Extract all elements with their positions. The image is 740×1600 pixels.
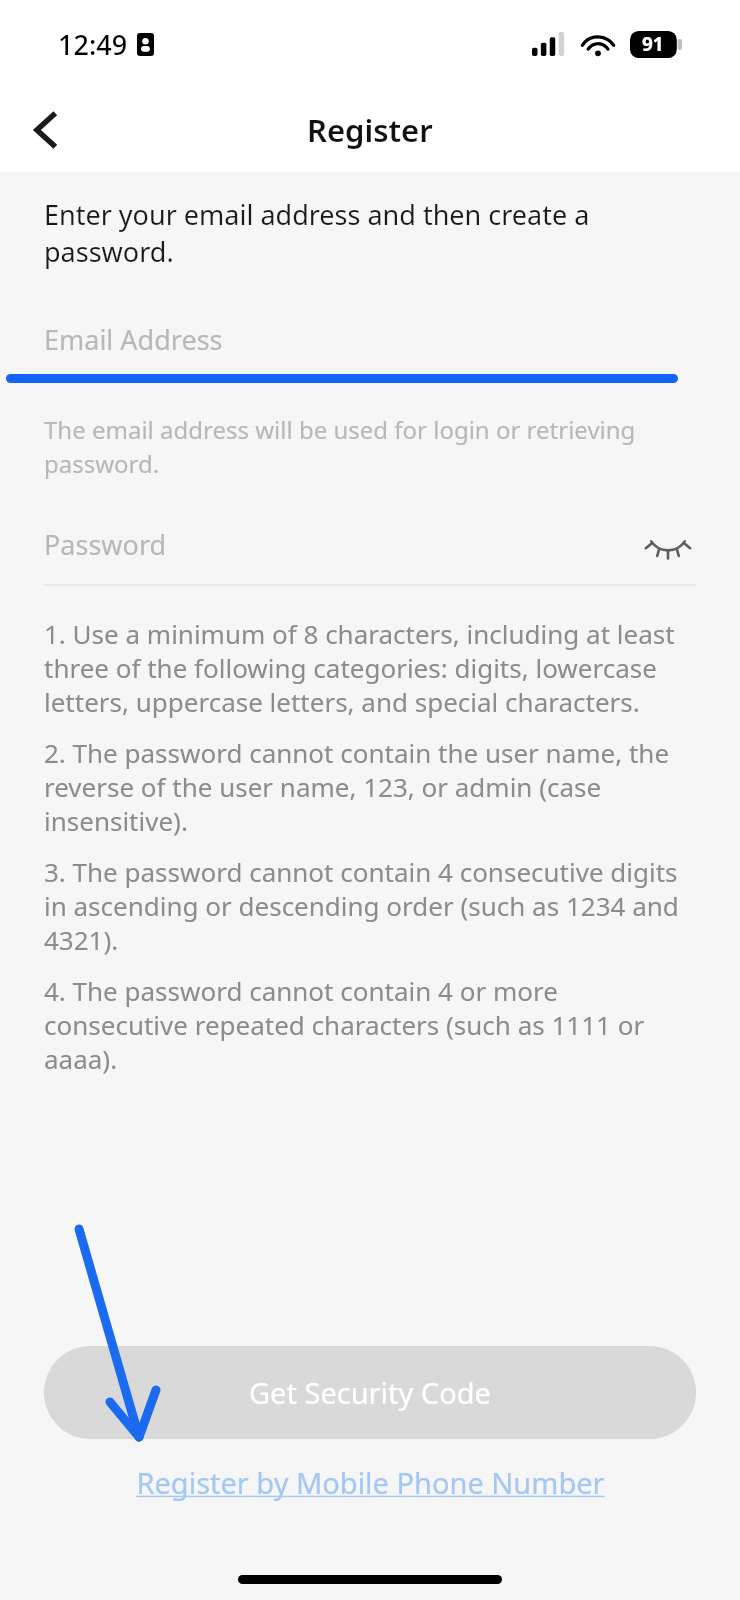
staticText: Get Security Code [249, 1373, 491, 1412]
staticText: The email address will be used for login… [44, 413, 696, 480]
staticText: 3. The password cannot contain 4 consecu… [44, 854, 696, 957]
staticText: 91 [642, 31, 664, 57]
button[interactable]: Password [44, 516, 640, 572]
staticText: Register [307, 109, 433, 151]
staticText: 4. The password cannot contain 4 or more… [44, 973, 696, 1076]
staticText: Email Address [44, 321, 223, 358]
staticText: 12:49 [58, 26, 128, 63]
button[interactable]: Email Address [44, 312, 696, 366]
button[interactable]: Get Security Code [44, 1346, 696, 1439]
staticText: Enter your email address and then create… [44, 196, 696, 270]
staticText: Register by Mobile Phone Number [136, 1463, 605, 1502]
button[interactable]: Back [14, 98, 78, 162]
staticText: 1. Use a minimum of 8 characters, includ… [44, 616, 696, 719]
staticText: 2. The password cannot contain the user … [44, 735, 696, 838]
button[interactable]: Register by Mobile Phone Number [44, 1455, 696, 1509]
button[interactable]: Show password [640, 516, 696, 572]
staticText: Password [44, 526, 167, 563]
